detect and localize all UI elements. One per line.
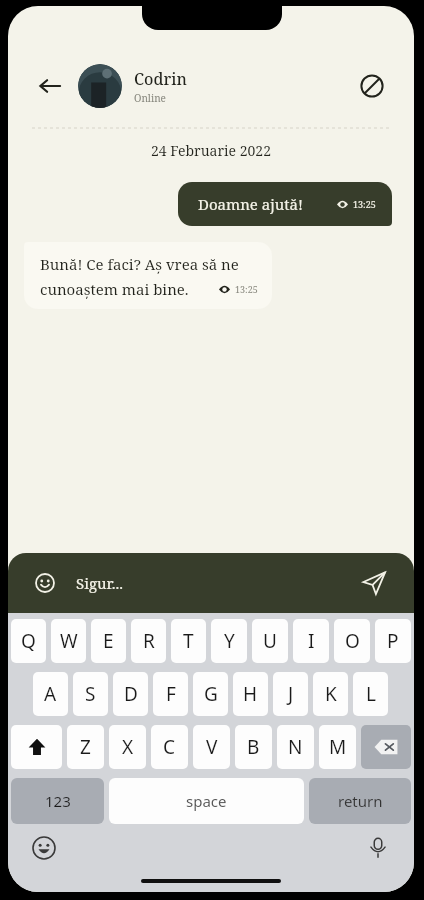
button[interactable]: T (171, 619, 206, 663)
staticText: A (44, 681, 57, 707)
staticText: H (243, 681, 258, 707)
button[interactable]: W (51, 619, 86, 663)
button[interactable]: U (252, 619, 288, 663)
button[interactable]: Q (11, 619, 46, 663)
button[interactable]: Sigur... (76, 573, 356, 593)
staticText: G (204, 681, 218, 707)
staticText: F (166, 681, 176, 707)
staticText: return (338, 791, 383, 811)
staticText: N (288, 734, 303, 760)
button[interactable]: space (109, 778, 304, 824)
staticText: U (263, 628, 277, 654)
button[interactable]: S (73, 672, 108, 716)
button[interactable]: Emoji keyboard (28, 832, 60, 864)
button[interactable]: L (353, 672, 388, 716)
staticText: Doamne ajută! (198, 194, 303, 214)
button[interactable]: I (293, 619, 329, 663)
staticText: 13:25 (353, 198, 376, 210)
button[interactable]: R (131, 619, 166, 663)
staticText: Q (21, 628, 36, 654)
button[interactable]: Block (352, 66, 392, 106)
button[interactable]: Emoji (30, 568, 60, 598)
button[interactable]: Codrin (78, 64, 352, 108)
button[interactable]: V (193, 725, 230, 769)
staticText: V (206, 734, 218, 760)
staticText: O (345, 628, 360, 654)
button[interactable]: N (277, 725, 314, 769)
staticText: E (103, 628, 114, 654)
button[interactable]: A (33, 672, 68, 716)
button[interactable]: Voice input (362, 832, 394, 864)
button[interactable]: F (153, 672, 188, 716)
button[interactable] (78, 64, 122, 108)
button[interactable]: Z (67, 725, 104, 769)
button[interactable]: D (113, 672, 148, 716)
button[interactable]: Y (211, 619, 247, 663)
staticText: 13:25 (235, 283, 258, 295)
staticText: I (308, 628, 315, 654)
button[interactable]: Bună! Ce faci? Aș vrea să ne (24, 242, 272, 309)
button[interactable]: X (109, 725, 146, 769)
staticText: Y (224, 628, 235, 654)
button[interactable]: M (319, 725, 356, 769)
staticText: Online (134, 91, 166, 105)
staticText: D (124, 681, 138, 707)
staticText: T (183, 628, 194, 654)
staticText: Bună! Ce faci? Aș vrea să ne (40, 254, 239, 274)
button[interactable]: 123 (11, 778, 104, 824)
button[interactable]: C (151, 725, 188, 769)
button[interactable]: Shift (11, 725, 62, 769)
staticText: L (366, 681, 376, 707)
button[interactable]: O (334, 619, 370, 663)
button[interactable]: Send (356, 565, 392, 601)
staticText: B (247, 734, 260, 760)
button[interactable]: Doamne ajută! (178, 182, 392, 226)
button[interactable]: J (273, 672, 308, 716)
staticText: C (163, 734, 176, 760)
staticText: X (122, 734, 134, 760)
staticText: cunoaștem mai bine. (40, 279, 189, 299)
staticText: Codrin (134, 68, 187, 90)
button[interactable]: B (235, 725, 272, 769)
staticText: P (387, 628, 399, 654)
staticText: S (85, 681, 96, 707)
button[interactable]: P (375, 619, 411, 663)
staticText: K (325, 681, 337, 707)
staticText: Z (80, 734, 91, 760)
button[interactable]: return (309, 778, 411, 824)
button[interactable]: Backspace (361, 725, 411, 769)
staticText: R (143, 628, 155, 654)
staticText: W (60, 628, 78, 654)
staticText: 24 Februarie 2022 (8, 141, 414, 160)
staticText: 123 (45, 791, 71, 811)
button[interactable]: Back (30, 66, 70, 106)
button[interactable]: E (91, 619, 126, 663)
staticText: M (329, 734, 347, 760)
button[interactable]: H (233, 672, 268, 716)
staticText: J (288, 681, 294, 707)
button[interactable]: K (313, 672, 348, 716)
staticText: space (186, 791, 227, 811)
button[interactable]: G (193, 672, 228, 716)
